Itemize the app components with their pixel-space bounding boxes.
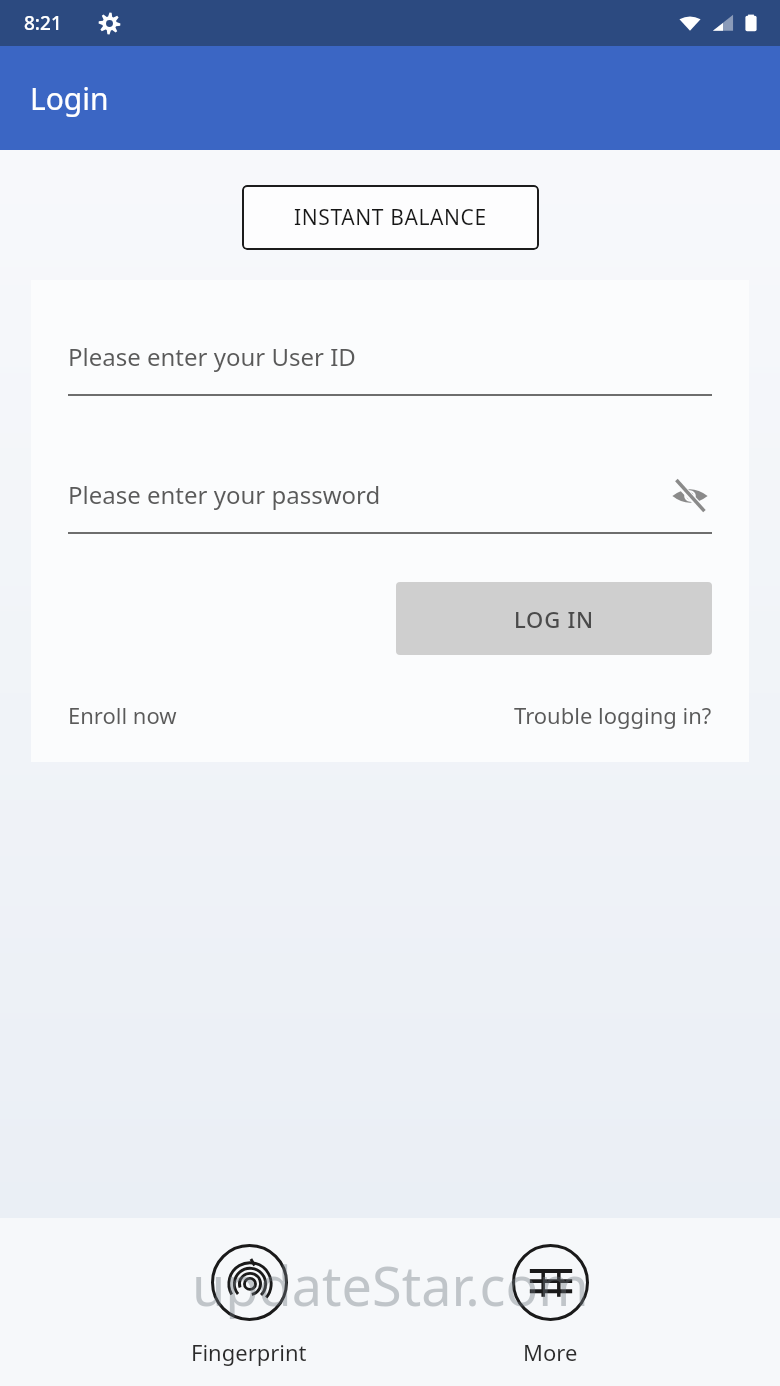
button[interactable]: More [498,1240,603,1371]
button[interactable]: LOG IN [396,582,712,655]
staticText: 8:21 [24,10,62,36]
staticText: Fingerprint [191,1337,307,1367]
staticText: LOG IN [514,604,594,634]
staticText: Trouble logging in? [514,700,712,730]
button[interactable]: INSTANT BALANCE [242,185,539,250]
button[interactable]: Enroll now [68,700,177,730]
staticText: More [523,1337,578,1367]
staticText: Please enter your password [68,478,381,511]
staticText: Please enter your User ID [68,340,356,373]
button[interactable]: Please enter your User ID [68,340,712,396]
button[interactable]: Show password [668,474,712,518]
staticText: Enroll now [68,700,177,730]
staticText: updateStar.com [192,1248,589,1322]
button[interactable]: Please enter your password [68,478,712,534]
button[interactable]: Fingerprint [177,1240,321,1371]
button[interactable]: Trouble logging in? [514,700,712,730]
staticText: Login [30,78,109,119]
staticText: INSTANT BALANCE [294,203,487,232]
